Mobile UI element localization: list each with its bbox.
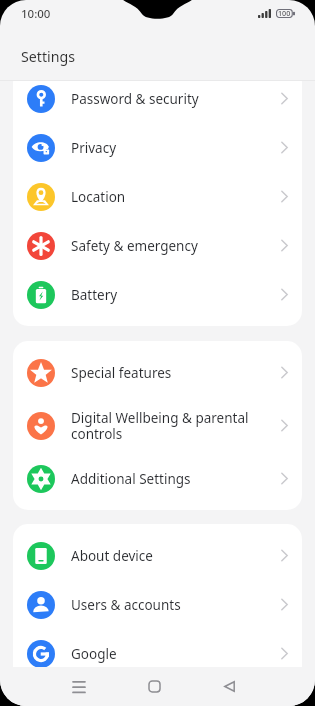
button[interactable]: Password & security [13, 74, 302, 123]
staticText: Additional Settings [71, 470, 256, 488]
button[interactable]: Digital Wellbeing & parental controls [13, 397, 302, 454]
button[interactable]: Location [13, 172, 302, 221]
staticText: Battery [71, 286, 256, 304]
staticText: Location [71, 188, 256, 206]
button[interactable]: Google [13, 629, 302, 678]
staticText: 10:00 [21, 6, 51, 22]
staticText: Privacy [71, 139, 256, 157]
staticText: Google [71, 645, 256, 663]
staticText: Safety & emergency [71, 237, 256, 255]
staticText: About device [71, 547, 256, 565]
staticText: Settings [21, 47, 75, 66]
button[interactable]: Safety & emergency [13, 221, 302, 270]
staticText: Users & accounts [71, 596, 256, 614]
staticText: 100 [278, 8, 291, 18]
button[interactable]: Special features [13, 348, 302, 397]
button[interactable]: Additional Settings [13, 454, 302, 503]
button[interactable]: Recent apps [55, 667, 103, 706]
button[interactable]: Privacy [13, 123, 302, 172]
button[interactable]: Users & accounts [13, 580, 302, 629]
button[interactable]: Battery [13, 270, 302, 319]
staticText: Special features [71, 364, 256, 382]
button[interactable]: Home [130, 667, 178, 706]
staticText: Digital Wellbeing & parental controls [71, 409, 256, 443]
staticText: Password & security [71, 90, 256, 108]
button[interactable]: Back [205, 667, 253, 706]
button[interactable]: About device [13, 531, 302, 580]
